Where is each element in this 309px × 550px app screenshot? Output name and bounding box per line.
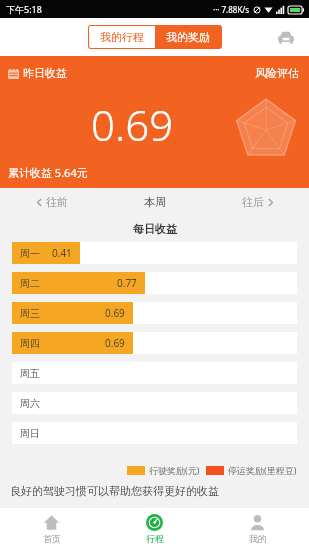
button[interactable]: 周六 <box>12 392 297 414</box>
button[interactable]: 我的行程 <box>89 26 155 48</box>
staticText: 周三 <box>20 307 40 320</box>
staticText: 停运奖励(里程豆) <box>228 464 297 476</box>
button[interactable]: 行程 <box>103 508 206 550</box>
staticText: 良好的驾驶习惯可以帮助您获得更好的收益 <box>10 484 219 498</box>
button[interactable]: My car <box>273 24 299 50</box>
staticText: 周五 <box>20 367 40 380</box>
staticText: 我的行程 <box>100 30 144 44</box>
staticText: 本周 <box>144 195 166 209</box>
button[interactable]: 周四 <box>12 332 297 354</box>
staticText: 周二 <box>20 277 40 290</box>
staticText: 周六 <box>20 397 40 410</box>
staticText: 累计收益 5.64元 <box>8 165 88 180</box>
button[interactable]: 往前 <box>0 188 103 216</box>
staticText: 我的奖励 <box>166 30 210 44</box>
staticText: 行驶奖励(元) <box>149 464 200 476</box>
staticText: 风险评估 <box>255 66 299 80</box>
staticText: 下午5:18 <box>6 3 42 15</box>
button[interactable]: 往后 <box>206 188 309 216</box>
staticText: 行程 <box>146 533 164 544</box>
button[interactable]: 我的 <box>206 508 309 550</box>
staticText: 0.41 <box>52 246 72 260</box>
button[interactable]: 周日 <box>12 422 297 444</box>
button[interactable]: 周三 <box>12 302 297 324</box>
button[interactable]: 首页 <box>0 508 103 550</box>
button[interactable]: 周二 <box>12 272 297 294</box>
button[interactable]: 我的奖励 <box>155 26 221 48</box>
staticText: 我的 <box>249 533 267 544</box>
staticText: 0.77 <box>117 276 137 290</box>
staticText: 昨日收益 <box>23 66 67 80</box>
staticText: 往后 <box>242 195 264 209</box>
button[interactable]: 周五 <box>12 362 297 384</box>
staticText: 往前 <box>46 195 68 209</box>
staticText: 周一 <box>20 247 40 260</box>
staticText: ··· 7.88K/s <box>213 4 250 15</box>
staticText: 周四 <box>20 337 40 350</box>
staticText: 每日收益 <box>133 222 177 236</box>
staticText: 0.69 <box>105 306 125 320</box>
staticText: 周日 <box>20 427 40 440</box>
staticText: 首页 <box>43 533 61 544</box>
staticText: 0.69 <box>91 96 174 153</box>
staticText: 0.69 <box>105 336 125 350</box>
button[interactable]: 周一 <box>12 242 297 264</box>
button[interactable]: 本周 <box>103 188 206 216</box>
